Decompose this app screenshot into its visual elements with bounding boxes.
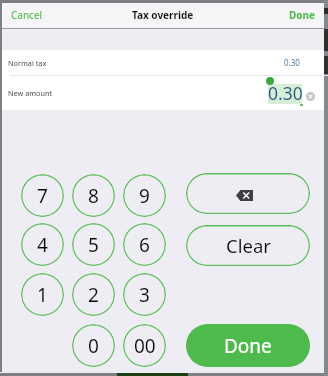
staticText: 0.30 — [268, 81, 302, 101]
staticText: 8 — [88, 183, 99, 209]
staticText: New amount — [8, 88, 53, 98]
button[interactable]: 0.30 — [268, 84, 302, 104]
staticText: 6 — [139, 232, 150, 258]
staticText: 1 — [37, 282, 48, 308]
button[interactable]: Backspace — [186, 173, 310, 214]
staticText: 9 — [139, 183, 150, 209]
staticText: Tax override — [132, 8, 194, 22]
button[interactable]: 9 — [123, 174, 166, 217]
staticText: Clear — [226, 233, 271, 258]
button[interactable]: 2 — [72, 273, 115, 316]
button[interactable]: 7 — [21, 174, 64, 217]
button[interactable]: 5 — [72, 223, 115, 266]
button[interactable]: 6 — [123, 223, 166, 266]
staticText: Cancel — [11, 8, 43, 22]
button[interactable]: Clear text — [306, 92, 315, 101]
button[interactable]: Clear — [186, 225, 310, 266]
button[interactable]: 3 — [123, 273, 166, 316]
staticText: 4 — [37, 232, 48, 258]
staticText: Done — [289, 8, 316, 22]
button[interactable]: Normal tax — [2, 50, 324, 75]
button[interactable]: 8 — [72, 174, 115, 217]
button[interactable]: 00 — [123, 324, 166, 367]
staticText: 5 — [88, 232, 99, 258]
button[interactable]: Cancel — [9, 5, 45, 25]
staticText: 7 — [37, 183, 48, 209]
staticText: 2 — [88, 282, 99, 308]
button[interactable]: 1 — [21, 273, 64, 316]
staticText: 0.30 — [284, 57, 300, 68]
button[interactable]: 0 — [72, 324, 115, 367]
staticText: Normal tax — [8, 58, 47, 68]
staticText: 0 — [88, 333, 99, 359]
staticText: 3 — [139, 282, 150, 308]
button[interactable]: Done — [186, 324, 310, 367]
button[interactable]: Done — [287, 5, 318, 25]
button[interactable]: 4 — [21, 223, 64, 266]
staticText: Done — [224, 333, 272, 359]
button[interactable]: New amount — [2, 76, 324, 110]
staticText: 00 — [134, 333, 156, 359]
